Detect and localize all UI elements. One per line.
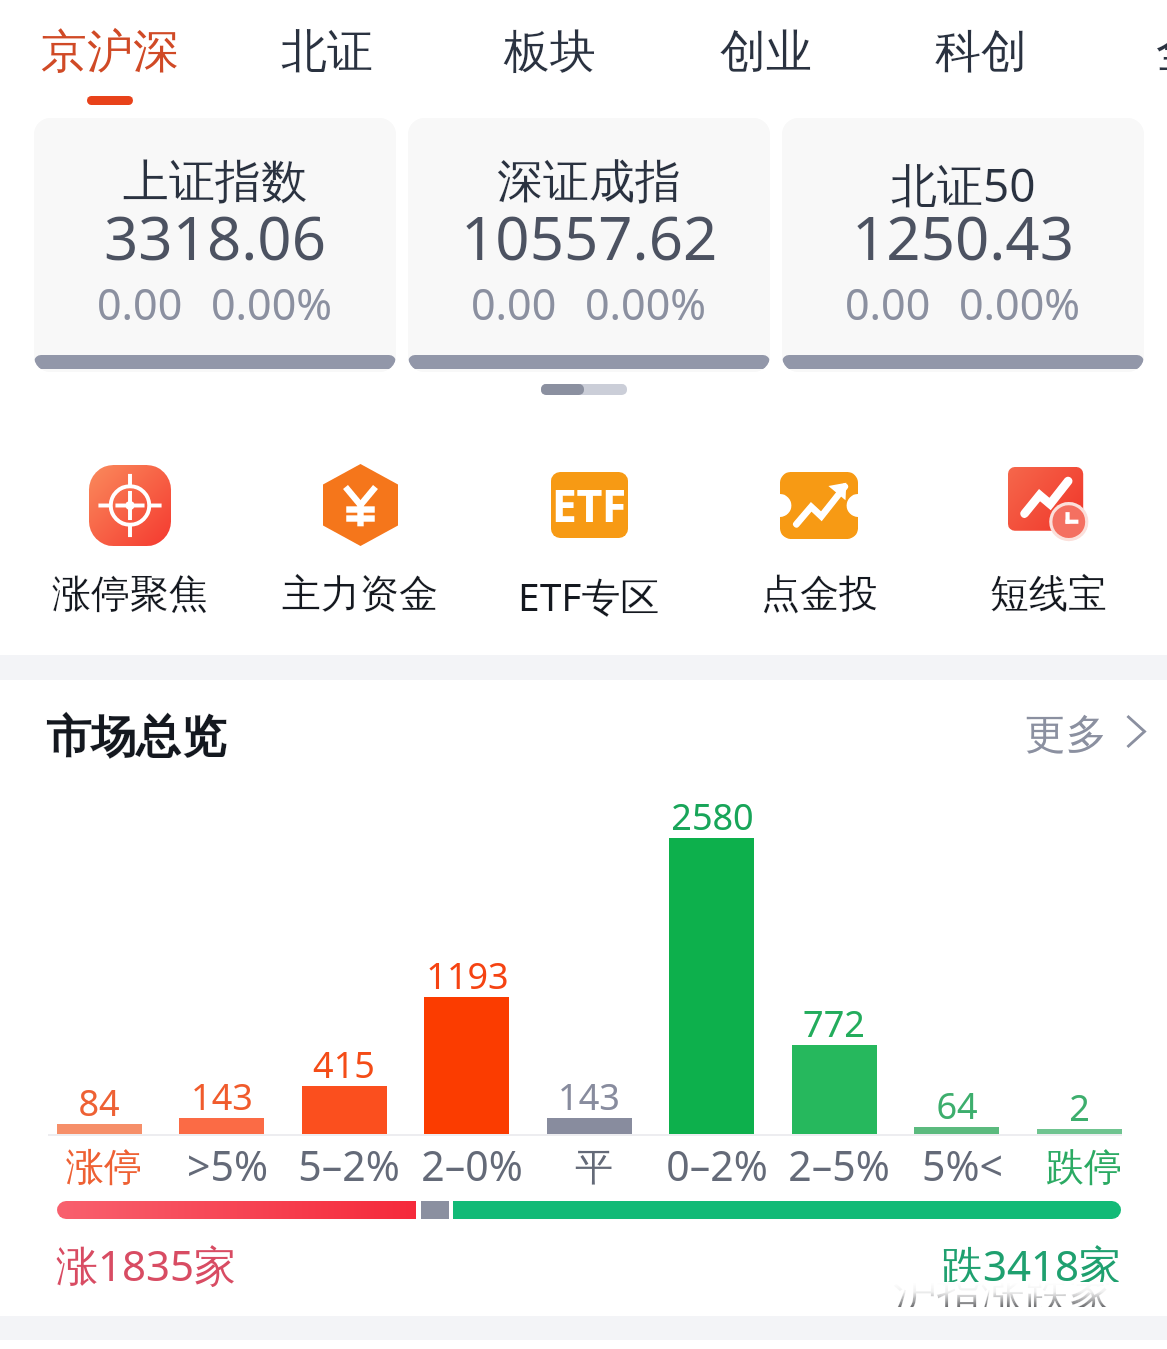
button[interactable]: 深证成指 — [408, 118, 770, 372]
button[interactable]: 涨停聚焦 — [20, 455, 240, 620]
button[interactable]: 北证 — [227, 0, 427, 110]
staticText: 2580 — [671, 792, 754, 841]
staticText: 0.00 — [97, 274, 183, 333]
staticText: 0.00% — [585, 274, 707, 333]
button[interactable]: 京沪深 — [10, 0, 210, 110]
staticText: 科创 — [935, 23, 1027, 81]
staticText: 创业 — [720, 23, 812, 81]
button[interactable]: 更多 — [1008, 680, 1160, 772]
staticText: 2 — [1069, 1083, 1090, 1132]
staticText: 5–2% — [298, 1137, 400, 1193]
staticText: 跌停 — [1046, 1143, 1122, 1191]
staticText: 0.00% — [211, 274, 333, 333]
staticText: ETF专区 — [518, 569, 660, 622]
staticText: ETF — [552, 475, 627, 535]
staticText: 2–5% — [788, 1137, 890, 1193]
button[interactable]: 板块 — [450, 0, 650, 110]
button[interactable]: 主力资金 — [250, 455, 470, 620]
staticText: 64 — [936, 1081, 978, 1130]
staticText: 市场总览 — [46, 709, 226, 766]
button[interactable]: Page indicator — [541, 384, 627, 395]
staticText: 沪指涨跌家数统 — [893, 1282, 1148, 1307]
staticText: 京沪深 — [41, 23, 179, 81]
staticText: 北证 — [281, 23, 373, 81]
staticText: 跌3418家 — [941, 1236, 1122, 1293]
staticText: 1193 — [426, 951, 509, 1000]
staticText: >5% — [187, 1137, 268, 1193]
staticText: 84 — [78, 1078, 120, 1127]
staticText: 板块 — [504, 23, 596, 81]
button[interactable]: 北证50 — [782, 118, 1144, 372]
staticText: 短线宝 — [990, 569, 1107, 618]
staticText: 2–0% — [421, 1137, 523, 1193]
staticText: 上证指数 — [123, 153, 307, 211]
staticText: 415 — [313, 1040, 375, 1089]
staticText: 772 — [803, 999, 865, 1048]
staticText: 0.00 — [845, 274, 931, 333]
staticText: 涨停聚焦 — [52, 569, 208, 618]
button[interactable]: 创业 — [666, 0, 866, 110]
staticText: 143 — [558, 1072, 620, 1121]
staticText: 3318.06 — [104, 196, 326, 278]
staticText: 10557.62 — [461, 196, 718, 278]
staticText: 0.00 — [471, 274, 557, 333]
button[interactable]: ETF — [479, 455, 699, 620]
button[interactable]: 点金投 — [709, 455, 929, 620]
staticText: 1250.43 — [852, 196, 1074, 278]
staticText: 143 — [191, 1072, 253, 1121]
staticText: 0–2% — [666, 1137, 768, 1193]
staticText: 更多 — [1025, 709, 1107, 761]
staticText: 深证成指 — [497, 153, 681, 211]
button[interactable]: 市场总览 — [40, 680, 240, 772]
staticText: 主力资金 — [282, 569, 438, 618]
button[interactable]: 全部 — [1156, 23, 1167, 93]
staticText: 涨停 — [66, 1143, 142, 1191]
staticText: 5%< — [922, 1137, 1003, 1193]
staticText: 平 — [575, 1143, 613, 1191]
staticText: 北证50 — [891, 153, 1036, 216]
staticText: 全部 — [1156, 23, 1167, 81]
button[interactable]: 短线宝 — [938, 455, 1158, 620]
staticText: 0.00% — [959, 274, 1081, 333]
button[interactable]: 上证指数 — [34, 118, 396, 372]
staticText: 点金投 — [761, 569, 878, 618]
button[interactable]: 科创 — [881, 0, 1081, 110]
staticText: 涨1835家 — [56, 1236, 237, 1293]
